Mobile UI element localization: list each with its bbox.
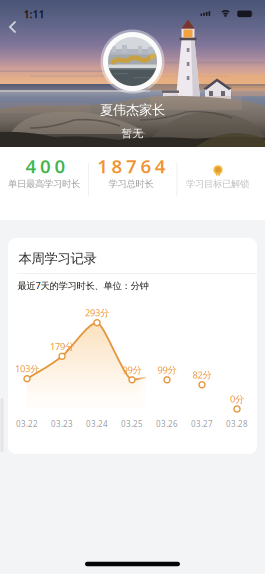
- staticText: 99分: [122, 364, 141, 376]
- staticText: 夏伟杰家长: [100, 102, 165, 118]
- staticText: 82分: [192, 369, 211, 381]
- staticText: 0: [40, 154, 51, 178]
- staticText: 单日最高学习时长: [8, 178, 80, 190]
- staticText: 最近7天的学习时长、单位：分钟: [17, 279, 148, 292]
- staticText: 03.24: [86, 419, 108, 429]
- staticText: 暂无: [121, 127, 143, 140]
- staticText: 179分: [50, 340, 74, 352]
- staticText: 4: [155, 154, 166, 178]
- staticText: 293分: [85, 306, 109, 319]
- staticText: 03.23: [51, 419, 73, 429]
- staticText: 4: [26, 154, 37, 178]
- staticText: 1:11: [23, 7, 44, 21]
- staticText: 03.28: [226, 419, 248, 429]
- staticText: 03.26: [156, 419, 178, 429]
- staticText: 99分: [157, 364, 176, 376]
- staticText: 学习目标已解锁: [186, 178, 249, 190]
- staticText: 6: [140, 154, 151, 178]
- staticText: 学习总时长: [108, 178, 153, 190]
- staticText: 03.25: [121, 419, 143, 429]
- staticText: 本周学习记录: [18, 250, 96, 267]
- staticText: 8: [112, 154, 123, 178]
- staticText: 103分: [15, 362, 39, 375]
- staticText: 03.27: [191, 419, 213, 429]
- staticText: 1: [97, 154, 108, 178]
- button[interactable]: Back: [1, 16, 23, 38]
- staticText: 0: [54, 154, 65, 178]
- staticText: 03.22: [16, 419, 38, 429]
- staticText: 0分: [230, 393, 244, 405]
- staticText: 7: [126, 154, 137, 178]
